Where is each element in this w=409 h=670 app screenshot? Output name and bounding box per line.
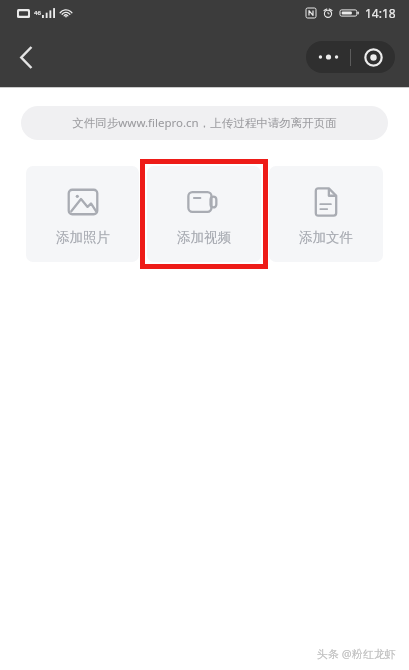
- button[interactable]: More: [306, 41, 350, 73]
- button[interactable]: 添加视频: [147, 166, 261, 262]
- staticText: 14:18: [365, 5, 396, 21]
- staticText: 添加文件: [299, 229, 353, 246]
- staticText: 头条 @粉红龙虾: [317, 646, 396, 661]
- button[interactable]: 添加文件: [269, 166, 383, 262]
- button[interactable]: Close: [351, 41, 395, 73]
- staticText: 46: [34, 9, 41, 17]
- button[interactable]: 文件同步www.filepro.cn，上传过程中请勿离开页面: [21, 106, 388, 140]
- button[interactable]: 添加照片: [26, 166, 139, 262]
- staticText: 文件同步www.filepro.cn，上传过程中请勿离开页面: [72, 115, 337, 131]
- staticText: 添加照片: [56, 229, 110, 246]
- staticText: 添加视频: [177, 229, 231, 246]
- button[interactable]: Back: [4, 35, 48, 79]
